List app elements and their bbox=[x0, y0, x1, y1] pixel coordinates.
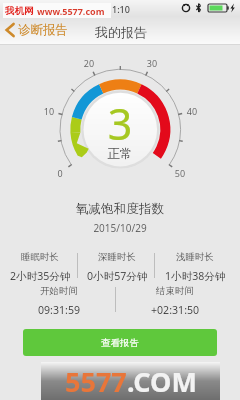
staticText: www.5577.com bbox=[37, 5, 105, 17]
staticText: 诊断报告 bbox=[18, 22, 68, 38]
staticText: 0 bbox=[50, 167, 70, 179]
staticText: 2小时35分钟 bbox=[10, 269, 71, 283]
staticText: 睡眠时长 bbox=[21, 251, 59, 263]
staticText: 5577 bbox=[65, 363, 127, 400]
staticText: 0小时57分钟 bbox=[87, 269, 148, 283]
staticText: 10 bbox=[39, 105, 59, 117]
staticText: 1:10 bbox=[112, 3, 130, 15]
button[interactable]: 查看报告 bbox=[23, 329, 217, 356]
staticText: 浅睡时长 bbox=[176, 251, 214, 263]
staticText: 40 bbox=[182, 105, 202, 117]
staticText: 开始时间 bbox=[40, 285, 78, 297]
staticText: 1小时38分钟 bbox=[165, 269, 226, 283]
button[interactable]: 诊断报告 bbox=[4, 22, 68, 38]
staticText: 2015/10/29 bbox=[0, 221, 240, 235]
staticText: 氧减饱和度指数 bbox=[0, 201, 240, 217]
staticText: 3 bbox=[0, 94, 240, 153]
staticText: 我的报告 bbox=[95, 24, 147, 40]
staticText: 正常 bbox=[0, 146, 240, 162]
staticText: 30 bbox=[142, 57, 162, 69]
staticText: 结束时间 bbox=[156, 285, 194, 297]
staticText: .COM bbox=[127, 363, 197, 400]
staticText: 09:31:59 bbox=[38, 303, 81, 317]
staticText: +02:31:50 bbox=[151, 303, 200, 317]
staticText: 20 bbox=[79, 57, 99, 69]
staticText: 深睡时长 bbox=[98, 251, 136, 263]
staticText: 我机网 bbox=[5, 5, 34, 17]
staticText: 查看报告 bbox=[101, 337, 139, 349]
staticText: 50 bbox=[170, 167, 190, 179]
